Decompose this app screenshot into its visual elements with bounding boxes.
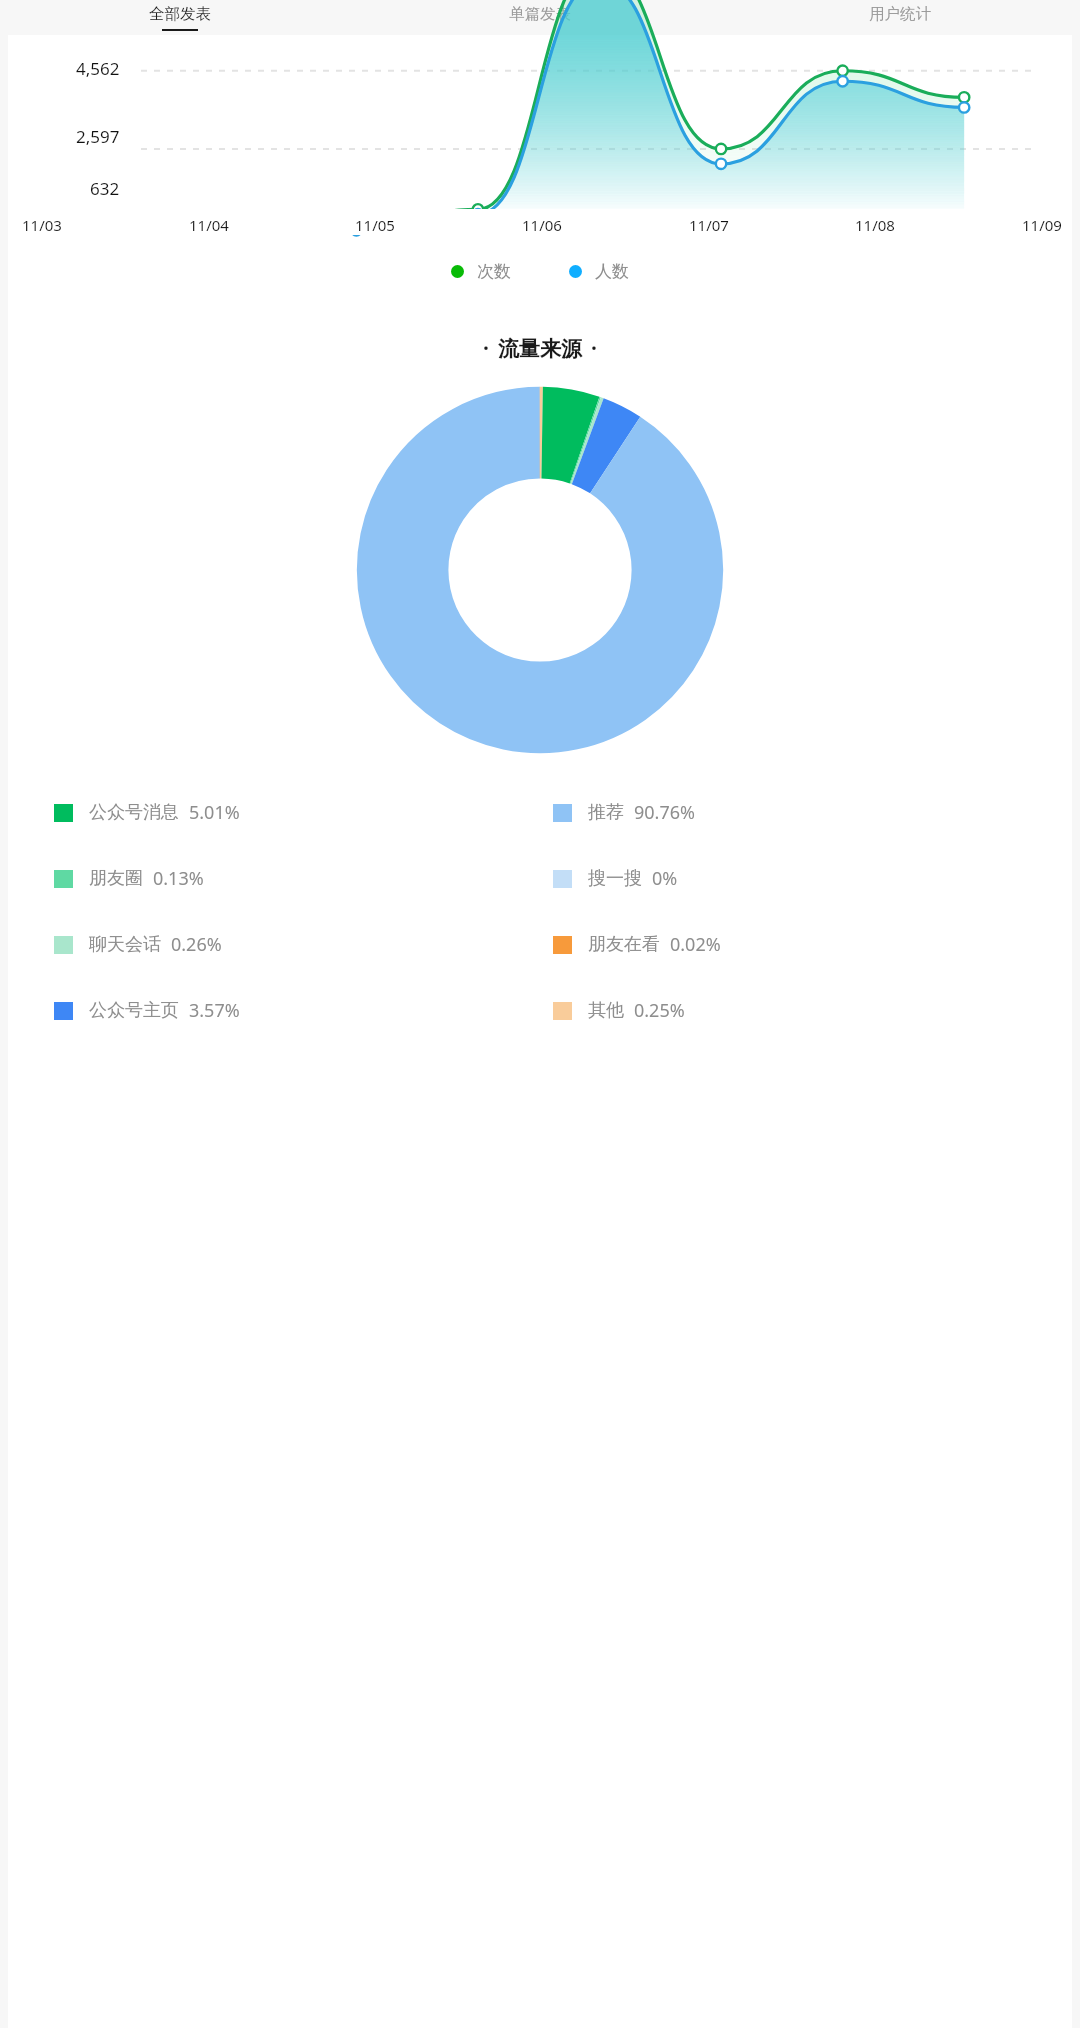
staticText: 人数 xyxy=(595,261,629,282)
staticText: 用户统计 xyxy=(869,4,931,24)
staticText: 公众号消息 xyxy=(89,801,179,824)
staticText: 朋友在看 xyxy=(588,933,660,956)
staticText: 推荐 xyxy=(588,801,624,824)
staticText: 单篇发表 xyxy=(509,4,571,24)
staticText: 0.13% xyxy=(153,866,204,891)
staticText: 90.76% xyxy=(634,800,695,825)
staticText: 公众号主页 xyxy=(89,999,179,1022)
staticText: 2,597 xyxy=(76,125,120,148)
button[interactable]: 公众号主页 xyxy=(54,998,240,1023)
staticText: 632 xyxy=(90,177,120,200)
staticText: 流量来源 xyxy=(498,336,582,362)
staticText: 4,562 xyxy=(76,57,120,80)
button[interactable]: 其他 xyxy=(553,998,685,1023)
button[interactable]: 朋友在看 xyxy=(553,932,721,957)
staticText: 其他 xyxy=(588,999,624,1022)
button[interactable]: 单篇发表 xyxy=(360,0,720,35)
staticText: 搜一搜 xyxy=(588,867,642,890)
staticText: 11/06 xyxy=(522,215,562,235)
button[interactable]: 推荐 xyxy=(553,800,695,825)
button[interactable]: 用户统计 xyxy=(720,0,1080,35)
other: 流量来源占比环形图 xyxy=(355,385,725,755)
button[interactable]: 朋友圈 xyxy=(54,866,204,891)
staticText: 5.01% xyxy=(189,800,240,825)
button[interactable]: 次数 xyxy=(451,261,511,282)
button[interactable]: 人数 xyxy=(569,261,629,282)
staticText: 次数 xyxy=(477,261,511,282)
staticText: · xyxy=(591,334,597,363)
staticText: · xyxy=(483,334,489,363)
staticText: 0% xyxy=(652,866,678,891)
button[interactable]: 搜一搜 xyxy=(553,866,678,891)
staticText: 3.57% xyxy=(189,998,240,1023)
button[interactable]: 聊天会话 xyxy=(54,932,222,957)
staticText: 全部发表 xyxy=(149,4,211,24)
button[interactable]: 全部发表 xyxy=(0,0,360,35)
staticText: 聊天会话 xyxy=(89,933,161,956)
staticText: 11/05 xyxy=(355,215,395,235)
staticText: 11/04 xyxy=(189,215,229,235)
staticText: 朋友圈 xyxy=(89,867,143,890)
staticText: 11/09 xyxy=(1022,215,1062,235)
staticText: 11/08 xyxy=(855,215,895,235)
button[interactable]: 公众号消息 xyxy=(54,800,240,825)
staticText: 0.25% xyxy=(634,998,685,1023)
staticText: 11/03 xyxy=(22,215,62,235)
staticText: 0.02% xyxy=(670,932,721,957)
staticText: 11/07 xyxy=(689,215,729,235)
staticText: 0.26% xyxy=(171,932,222,957)
